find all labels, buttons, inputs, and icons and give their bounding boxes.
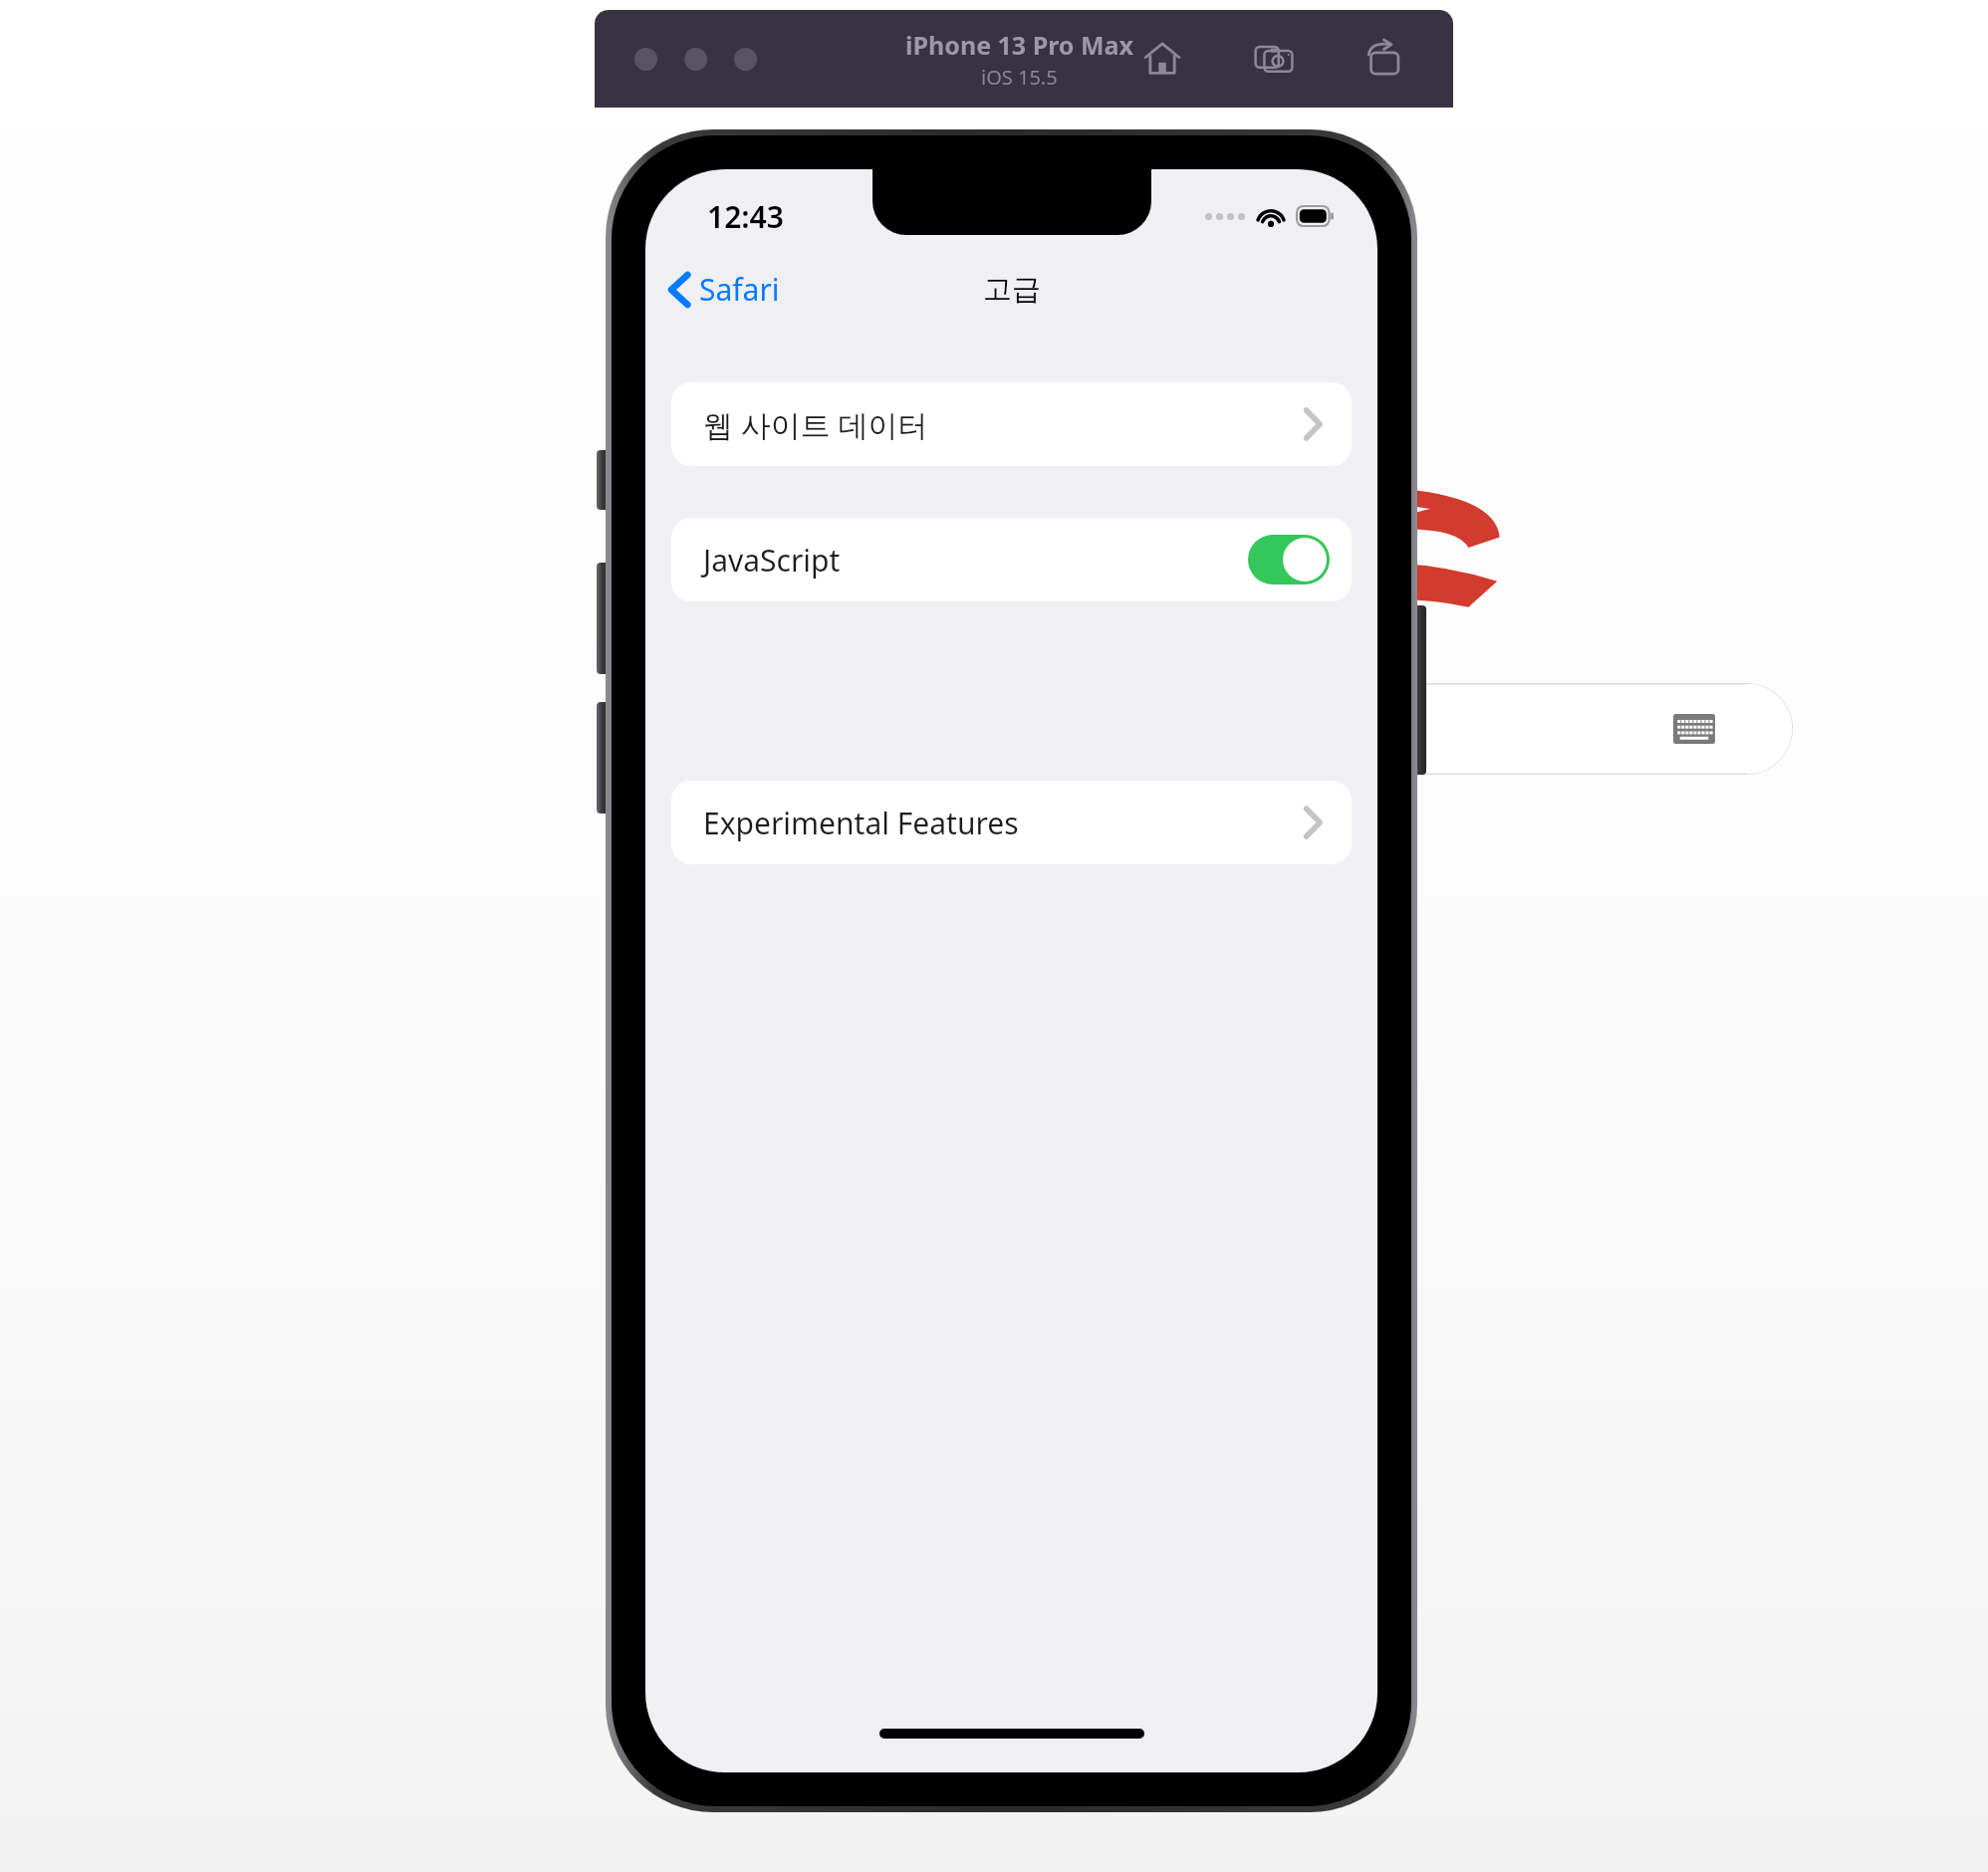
staticText: Experimental Features [703,803,1019,843]
button[interactable] [634,48,657,71]
button[interactable]: Keyboard [1673,714,1715,744]
button[interactable]: Keyboard [1374,683,1793,775]
button[interactable] [597,563,611,674]
staticText: iPhone 13 Pro Max [905,28,1133,62]
staticText: JavaScript [703,540,841,581]
button[interactable]: Rotate [1360,33,1411,85]
button[interactable] [734,48,757,71]
staticText: iOS 15.5 [981,64,1058,91]
button[interactable]: JavaScript [671,518,1352,601]
staticText: Safari [699,269,780,310]
staticText: 고급 [983,271,1041,308]
button[interactable]: 웹 사이트 데이터 [671,382,1352,466]
button[interactable] [597,702,611,814]
button[interactable]: Screenshot [1248,33,1300,85]
button[interactable]: Experimental Features [671,781,1352,864]
button[interactable]: Home [1136,33,1188,85]
button[interactable]: Safari [659,263,790,316]
button[interactable] [1412,605,1426,775]
button[interactable] [597,450,611,510]
button[interactable] [1248,535,1330,585]
button[interactable] [684,48,707,71]
staticText: 웹 사이트 데이터 [703,404,928,445]
staticText: 12:43 [707,196,784,237]
